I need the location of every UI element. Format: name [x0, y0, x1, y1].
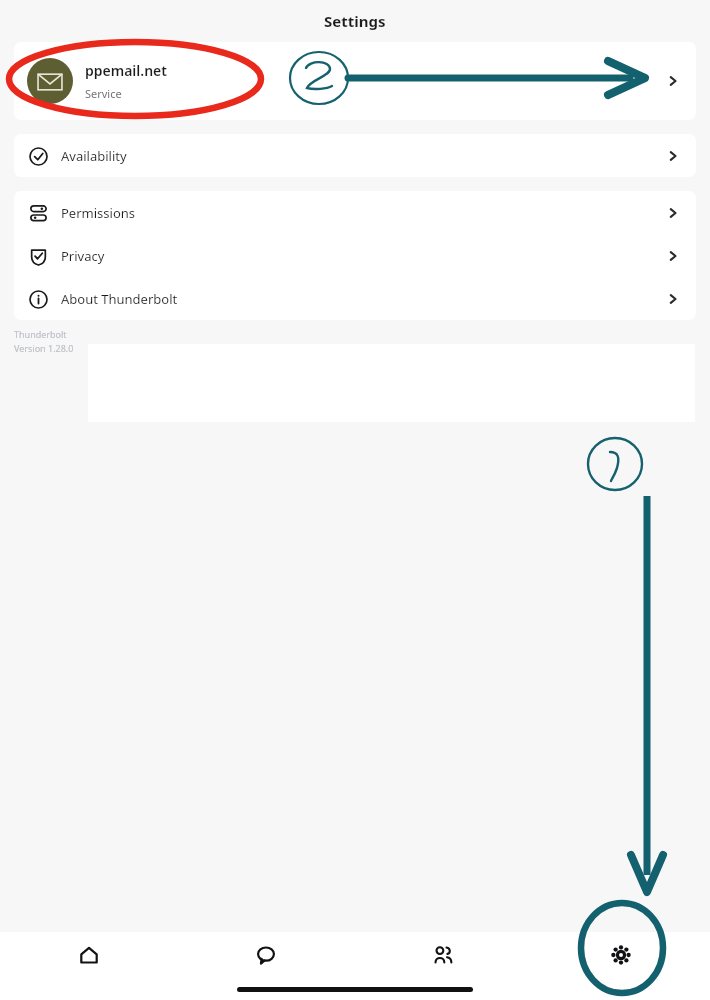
- staticText: About Thunderbolt: [61, 290, 178, 308]
- button[interactable]: Home: [0, 932, 177, 978]
- button[interactable]: Chat: [177, 932, 354, 978]
- staticText: Availability: [61, 147, 127, 165]
- button[interactable]: Settings: [532, 932, 710, 978]
- staticText: ppemail.net: [85, 61, 167, 80]
- button[interactable]: Availability: [14, 134, 696, 177]
- button[interactable]: About Thunderbolt: [14, 277, 696, 320]
- button[interactable]: Permissions: [14, 191, 696, 234]
- button[interactable]: ppemail.net: [14, 42, 696, 120]
- staticText: Permissions: [61, 204, 136, 222]
- button[interactable]: Privacy: [14, 234, 696, 277]
- staticText: Thunderbolt: [14, 328, 67, 340]
- staticText: Privacy: [61, 247, 105, 265]
- staticText: Settings: [324, 11, 386, 31]
- staticText: Version 1.28.0: [14, 342, 74, 354]
- button[interactable]: Contacts: [354, 932, 532, 978]
- staticText: Service: [85, 86, 122, 101]
